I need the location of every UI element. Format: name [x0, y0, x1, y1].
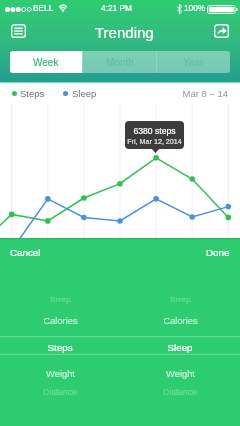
staticText: Month: [106, 57, 134, 68]
button[interactable]: Calories: [135, 313, 225, 329]
staticText: 100%: [184, 3, 206, 12]
staticText: Steps: [20, 88, 45, 99]
button[interactable]: Steps: [15, 339, 105, 355]
staticText: Distance: [163, 387, 197, 397]
staticText: Distance: [43, 387, 77, 397]
staticText: Week: [33, 57, 59, 68]
staticText: Sleep: [170, 295, 191, 304]
button[interactable]: Year: [157, 51, 230, 73]
button[interactable]: Week: [10, 51, 82, 73]
staticText: Year: [183, 57, 204, 68]
staticText: Trending: [95, 24, 154, 41]
staticText: Sleep: [50, 295, 71, 304]
staticText: Calories: [163, 316, 198, 326]
button[interactable]: Distance: [135, 384, 225, 400]
staticText: Calories: [43, 316, 78, 326]
button[interactable]: Sleep: [15, 291, 105, 307]
button[interactable]: Sleep: [135, 291, 225, 307]
button[interactable]: Calories: [15, 313, 105, 329]
staticText: Weight: [46, 369, 75, 379]
staticText: BELL: [33, 3, 54, 12]
button[interactable]: Weight: [135, 366, 225, 382]
staticText: Cancel: [10, 247, 41, 258]
button[interactable]: Done: [206, 247, 230, 258]
staticText: Sleep: [72, 88, 97, 99]
staticText: 6380 steps: [125, 126, 184, 136]
button[interactable]: Weight: [15, 366, 105, 382]
button[interactable]: Sleep: [135, 339, 225, 355]
staticText: Fri, Mar 12, 2014: [125, 137, 184, 145]
button[interactable]: Distance: [15, 384, 105, 400]
staticText: Mar 8 – 14: [148, 88, 228, 99]
button[interactable]: Menu: [9, 22, 30, 40]
staticText: Weight: [166, 369, 195, 379]
button[interactable]: Share: [212, 22, 232, 40]
staticText: Done: [206, 247, 230, 258]
button[interactable]: Month: [83, 51, 156, 73]
button[interactable]: Cancel: [10, 247, 41, 258]
staticText: Steps: [47, 342, 73, 353]
staticText: 4:21 PM: [101, 3, 132, 12]
staticText: Sleep: [167, 342, 193, 353]
